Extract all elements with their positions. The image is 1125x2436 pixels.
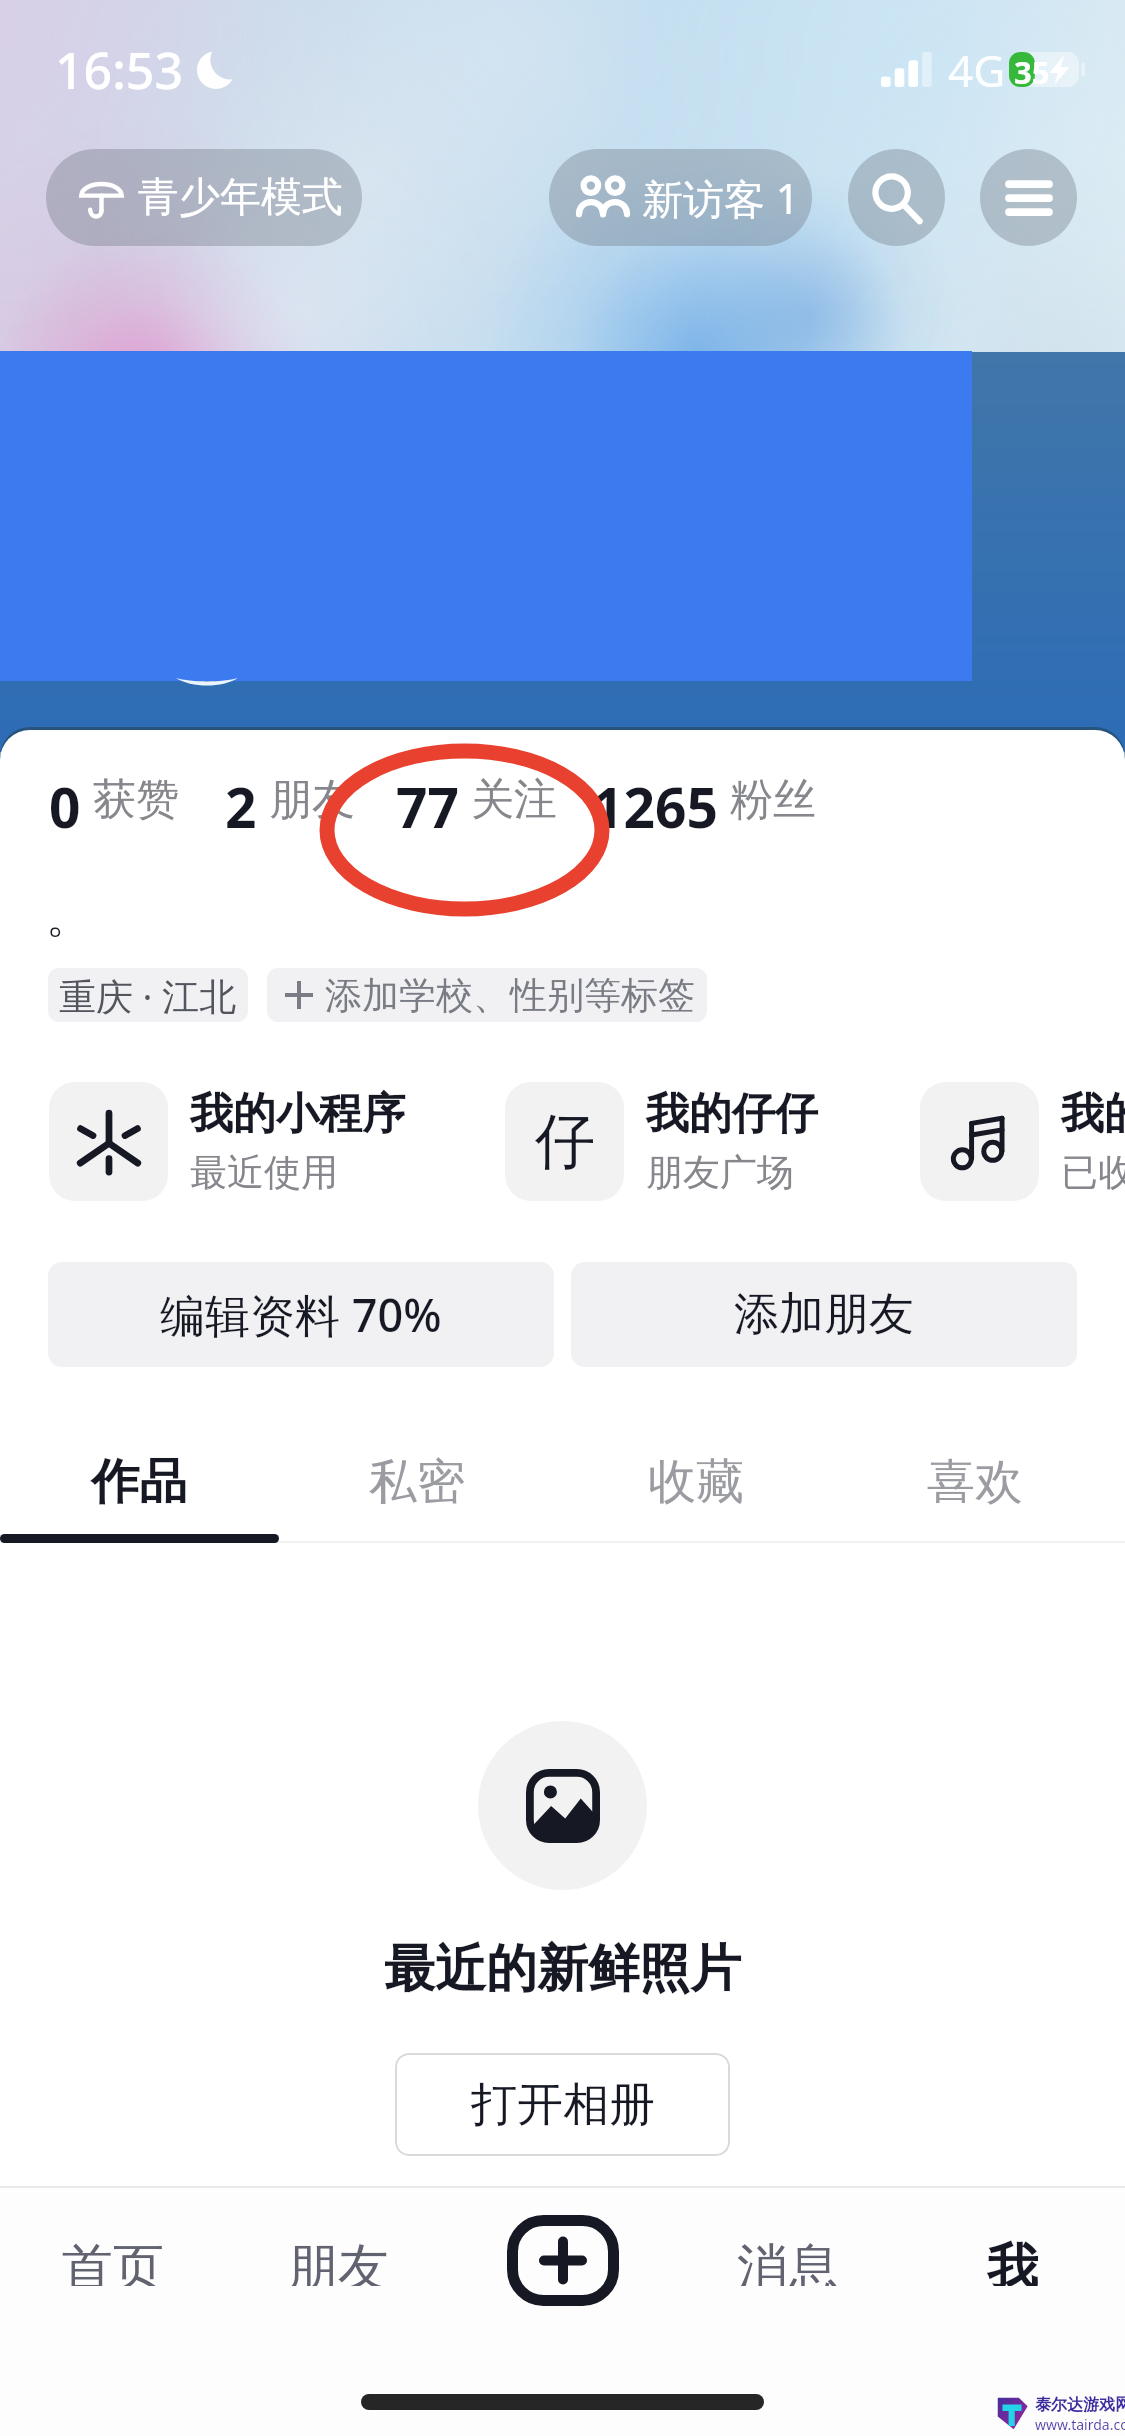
button[interactable]: 新访客 1 [549, 149, 812, 246]
staticText: 我的小程序 [190, 1087, 405, 1141]
staticText: 关注 [471, 773, 557, 827]
staticText: 重庆 · 江北 [59, 970, 237, 1021]
staticText: 我的音乐 [1061, 1087, 1125, 1141]
staticText: 粉丝 [730, 773, 816, 827]
staticText: 私密 [369, 1452, 465, 1512]
staticText: 青少年模式 [138, 172, 343, 224]
button[interactable]: 打开相册 [395, 2053, 730, 2156]
button[interactable]: 0 [49, 769, 179, 831]
button[interactable]: 作品 [0, 1436, 278, 1528]
staticText: 1265 [592, 769, 718, 831]
staticText: 朋友 [287, 2236, 389, 2286]
button[interactable]: 青少年模式 [46, 149, 362, 246]
staticText: 作品 [91, 1452, 187, 1512]
button[interactable]: 朋友 [225, 2236, 450, 2286]
button[interactable]: 添加学校、性别等标签 [267, 968, 707, 1022]
staticText: 2 [225, 769, 257, 831]
staticText: 我的仔仔 [646, 1087, 818, 1141]
button[interactable]: Search [848, 149, 945, 246]
button[interactable]: 重庆 · 江北 [48, 968, 248, 1022]
staticText: 编辑资料 70% [160, 1284, 442, 1345]
button[interactable]: 消息 [675, 2236, 900, 2286]
staticText: 添加朋友 [734, 1286, 914, 1343]
staticText: 消息 [737, 2236, 839, 2286]
staticText: 16:53 [55, 36, 183, 104]
staticText: 已收藏 [1061, 1149, 1125, 1196]
staticText: 收藏 [648, 1452, 744, 1512]
button[interactable]: 喜欢 [835, 1436, 1114, 1528]
staticText: 仔 [535, 1104, 595, 1180]
staticText: 首页 [62, 2236, 164, 2286]
staticText: 添加学校、性别等标签 [325, 972, 695, 1019]
staticText: 喜欢 [927, 1452, 1023, 1512]
staticText: 。 [46, 890, 90, 945]
button[interactable]: 我的音乐 [920, 1082, 1125, 1201]
staticText: www.tairda.com [1035, 2415, 1125, 2431]
staticText: 4G [948, 40, 1006, 100]
button[interactable]: Menu [980, 149, 1077, 246]
button[interactable]: 我的小程序 [49, 1082, 479, 1201]
staticText: 打开相册 [471, 2076, 655, 2134]
staticText: 最近使用 [190, 1149, 338, 1196]
button[interactable]: 仔 [505, 1082, 935, 1201]
button[interactable]: 首页 [0, 2236, 225, 2286]
staticText: 获赞 [93, 773, 179, 827]
button[interactable]: 2 [225, 769, 355, 831]
staticText: 朋友 [269, 773, 355, 827]
staticText: 35 [1014, 51, 1050, 86]
staticText: 新访客 1 [642, 170, 800, 226]
button[interactable]: 添加朋友 [571, 1262, 1077, 1367]
staticText: 最近的新鲜照片 [384, 1937, 741, 2001]
staticText: 泰尔达游戏网 [1035, 2395, 1125, 2415]
staticText: 0 [49, 769, 81, 831]
button[interactable]: Create [507, 2215, 619, 2306]
staticText: 77 [396, 769, 459, 831]
button[interactable]: 77 [396, 769, 557, 831]
button[interactable]: 私密 [278, 1436, 556, 1528]
button[interactable]: 1265 [592, 769, 816, 831]
staticText: 我 [987, 2236, 1038, 2286]
button[interactable]: 收藏 [556, 1436, 835, 1528]
staticText: 朋友广场 [646, 1149, 794, 1196]
button[interactable]: 我 [900, 2236, 1125, 2286]
button[interactable]: 编辑资料 70% [48, 1262, 554, 1367]
